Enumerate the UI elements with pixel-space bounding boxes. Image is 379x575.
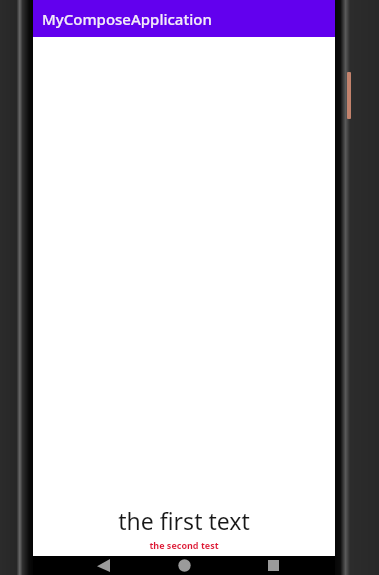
staticText: MyComposeApplication: [42, 9, 212, 29]
button[interactable]: MyComposeApplication: [33, 0, 335, 37]
button[interactable]: Recents: [253, 556, 293, 575]
button[interactable]: Back: [83, 556, 123, 575]
staticText: the first text: [118, 505, 250, 536]
button[interactable]: Power: [347, 72, 351, 119]
staticText: the second test: [149, 539, 219, 551]
button[interactable]: Home: [164, 556, 204, 575]
